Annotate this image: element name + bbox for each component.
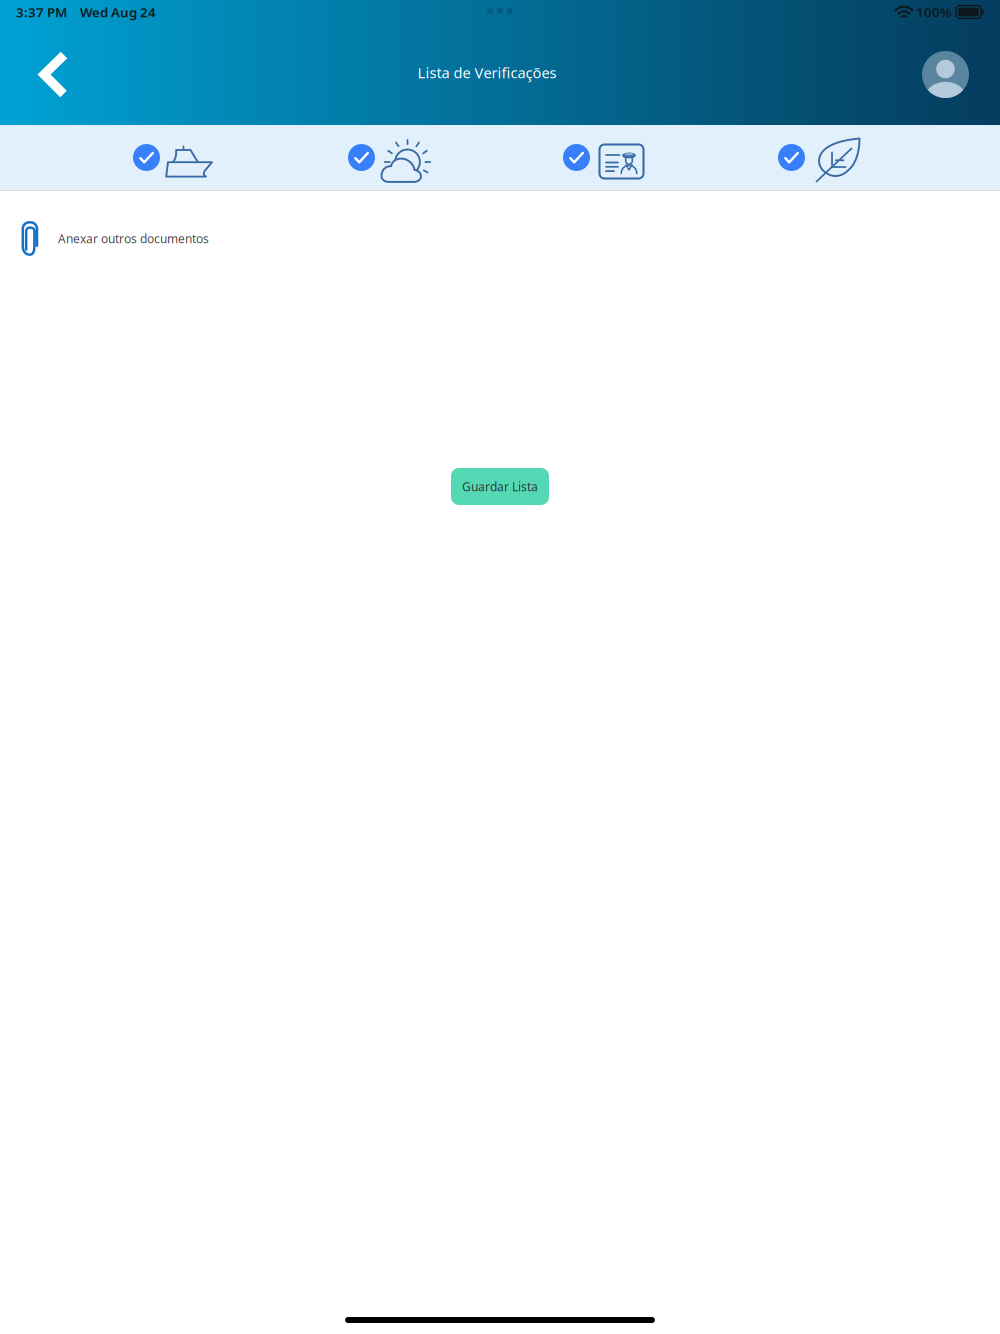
staticText: Guardar Lista [462, 478, 538, 494]
staticText: 100% [916, 3, 952, 21]
button[interactable]: Ambiente [778, 124, 993, 190]
button[interactable]: Embarcação [133, 124, 348, 190]
button[interactable]: Guardar Lista [451, 468, 549, 505]
button[interactable]: Back [0, 38, 89, 110]
staticText: 3:37 PM [16, 3, 67, 21]
staticText: Wed Aug 24 [80, 3, 156, 21]
staticText: Lista de Verificações [417, 63, 556, 82]
button[interactable]: Meteorologia [348, 124, 563, 190]
button[interactable]: Anexar outros documentos [0, 191, 1000, 286]
staticText: Anexar outros documentos [58, 230, 209, 246]
button[interactable]: Account [906, 39, 1000, 110]
button[interactable]: Tripulação [563, 124, 778, 190]
